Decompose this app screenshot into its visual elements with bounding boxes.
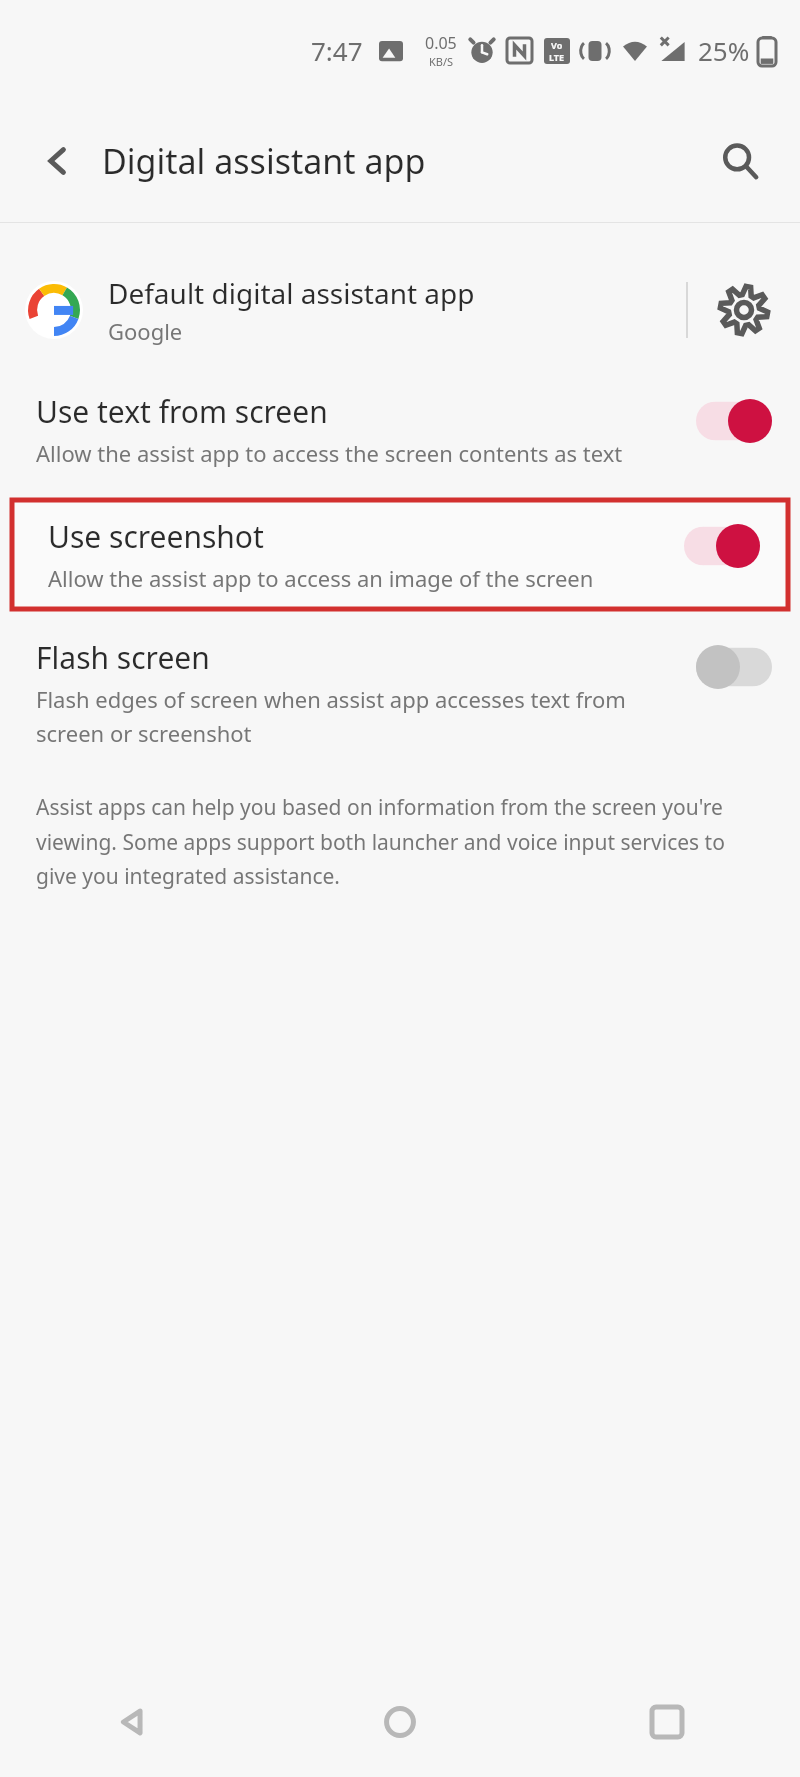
staticText: Google — [108, 316, 183, 346]
staticText: Use text from screen — [36, 391, 328, 432]
staticText: Vo — [551, 39, 563, 51]
staticText: KB/S — [429, 54, 454, 69]
staticText: LTE — [549, 51, 565, 63]
button[interactable]: Back — [30, 133, 86, 189]
staticText: Flash edges of screen when assist app ac… — [36, 684, 674, 749]
button[interactable]: Use text from screen — [0, 375, 800, 484]
staticText: Assist apps can help you based on inform… — [36, 793, 764, 890]
button[interactable]: Search — [710, 131, 770, 191]
button[interactable]: Recent apps — [533, 1667, 800, 1777]
staticText: Allow the assist app to access the scree… — [36, 438, 623, 468]
staticText: Default digital assistant app — [108, 274, 475, 312]
button[interactable]: Default digital assistant app — [0, 255, 800, 365]
staticText: 25% — [698, 33, 750, 68]
button[interactable]: Flash screen — [0, 621, 800, 765]
staticText: Use screenshot — [48, 516, 264, 557]
button[interactable]: Home — [266, 1667, 533, 1777]
staticText: Digital assistant app — [102, 138, 426, 184]
button[interactable]: Back — [0, 1667, 266, 1777]
button[interactable]: Use screenshot — [12, 500, 788, 609]
button[interactable]: Settings — [688, 255, 800, 365]
button[interactable]: On — [684, 524, 760, 568]
button[interactable]: Off — [696, 645, 772, 689]
staticText: Allow the assist app to access an image … — [48, 563, 594, 593]
button[interactable]: On — [696, 399, 772, 443]
staticText: 7:47 — [311, 33, 363, 68]
staticText: 0.05 — [425, 32, 457, 54]
staticText: Flash screen — [36, 637, 210, 678]
